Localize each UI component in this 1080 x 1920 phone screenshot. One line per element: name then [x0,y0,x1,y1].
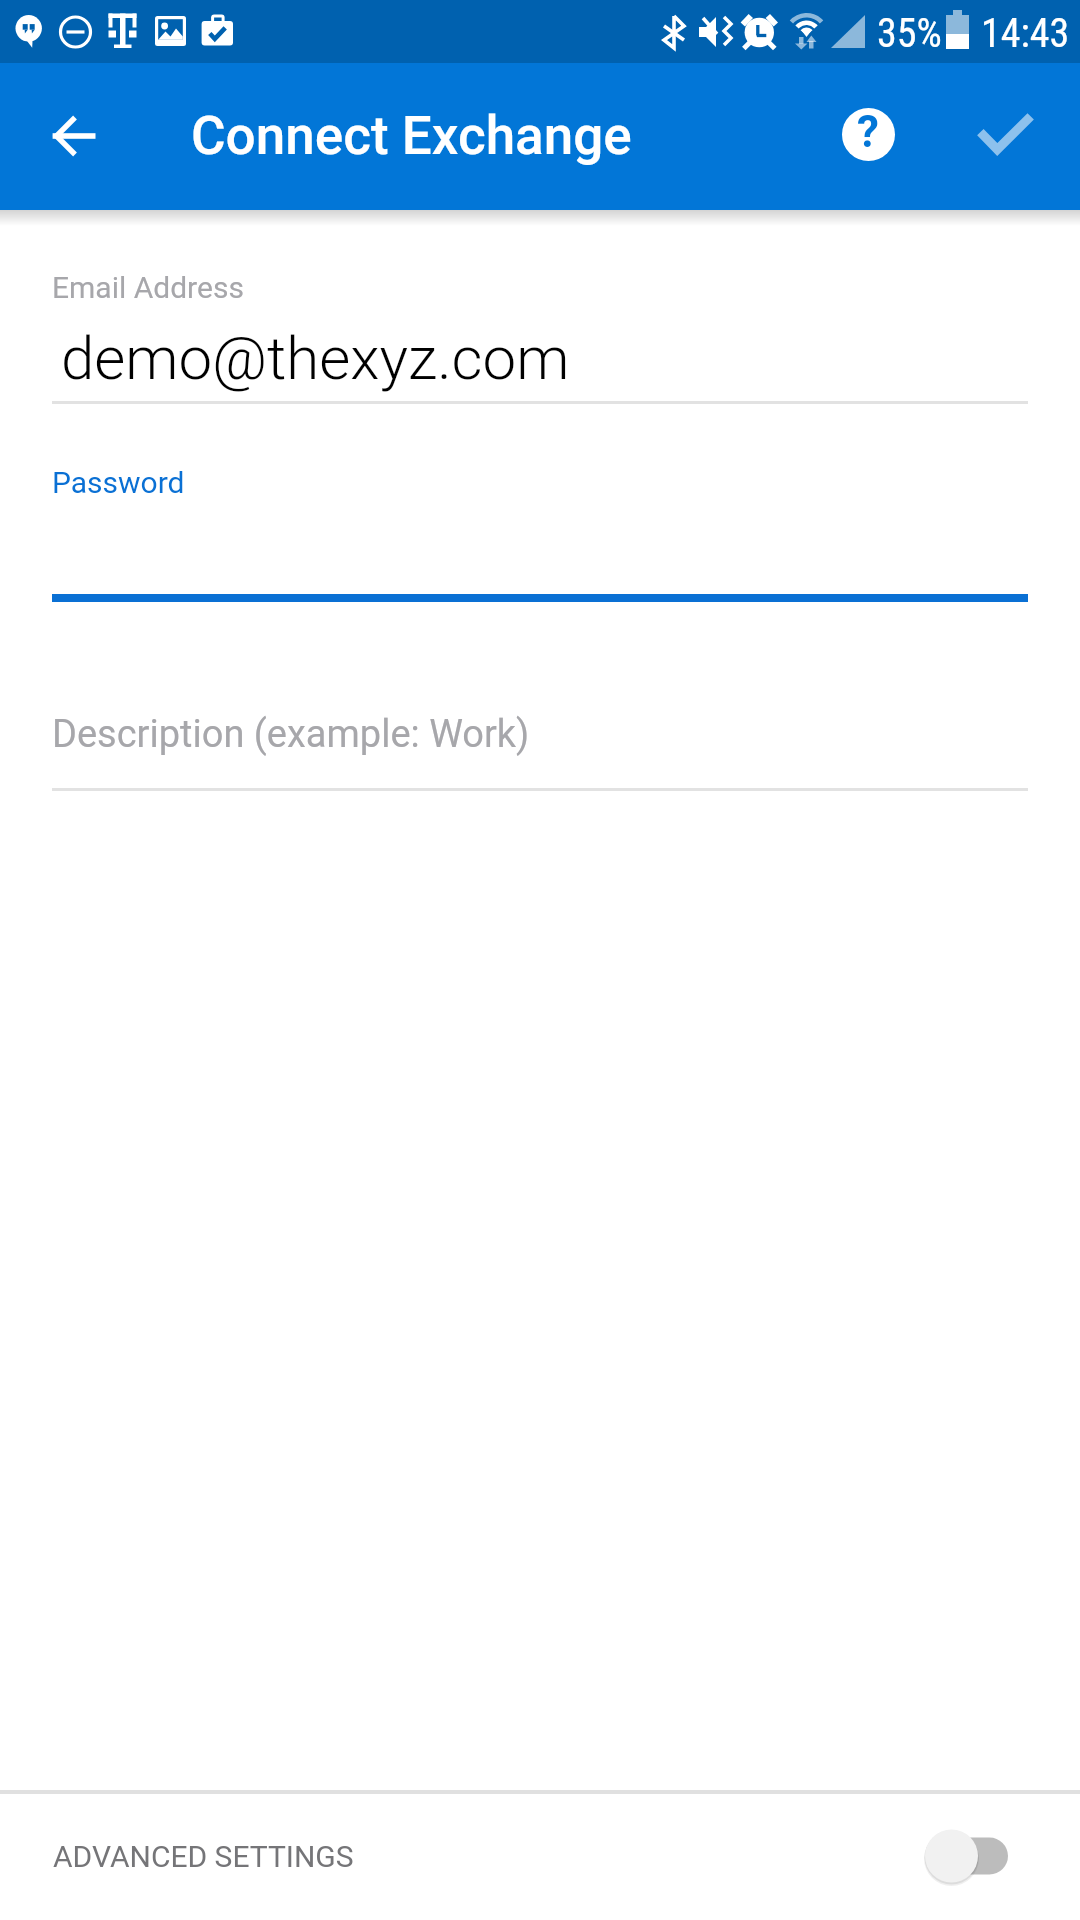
staticText: ADVANCED SETTINGS [53,1839,354,1874]
button[interactable]: ADVANCED SETTINGS [0,1794,1080,1920]
staticText: Connect Exchange [191,105,632,167]
staticText: 35% [877,10,942,57]
button[interactable]: Password [52,460,1028,602]
staticText: ? [857,106,879,158]
button[interactable]: Navigate up [25,90,123,182]
staticText: Email Address [52,270,244,305]
staticText: Description (example: Work) [52,712,530,757]
staticText: 14:43 [981,10,1070,57]
button[interactable]: Email Address [52,266,1028,404]
staticText: demo@thexyz.com [61,323,570,393]
button[interactable]: Help [822,88,914,180]
button[interactable]: Description (example: Work) [52,700,1028,791]
button[interactable]: Done [959,88,1051,180]
staticText: Password [52,465,185,500]
